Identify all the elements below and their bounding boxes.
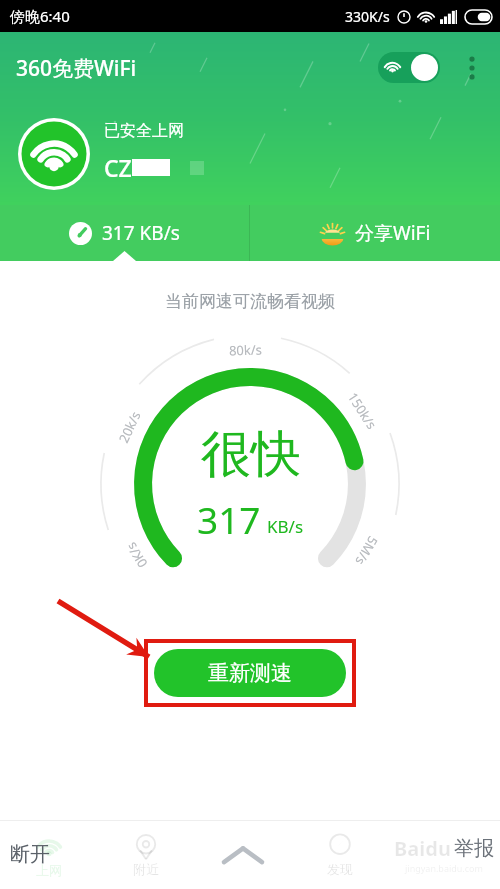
staticText: jingyan.baidu.com (405, 862, 483, 874)
staticText: 傍晚6:40 (10, 6, 70, 26)
staticText: 317 (197, 494, 261, 544)
button[interactable]: 重新测速 (154, 649, 346, 697)
staticText: 20k/s (114, 408, 145, 446)
button[interactable]: Toggle WiFi (378, 52, 440, 83)
staticText: KB/s (267, 515, 304, 538)
staticText: 分享WiFi (355, 220, 431, 246)
staticText: 当前网速可流畅看视频 (165, 291, 335, 312)
staticText: 很快 (201, 423, 301, 486)
staticText: Baidu (394, 835, 451, 862)
button[interactable]: More options (454, 50, 490, 86)
staticText: CZ (104, 152, 132, 183)
button[interactable]: Baidu (388, 820, 500, 889)
staticText: 5M/s (351, 533, 382, 569)
button[interactable]: 上网 (0, 820, 97, 889)
button[interactable]: Expand panel (194, 820, 291, 889)
button[interactable]: 317 KB/s (0, 205, 249, 261)
staticText: 上网 (36, 862, 62, 878)
button[interactable]: 附近 (97, 820, 194, 889)
staticText: 330K/s (345, 7, 390, 26)
staticText: 80k/s (229, 340, 262, 359)
button[interactable]: 发现 (291, 820, 388, 889)
staticText: 150k/s (344, 389, 381, 433)
button[interactable]: 分享WiFi (250, 205, 500, 261)
staticText: 附近 (133, 861, 159, 877)
staticText: 317 KB/s (102, 220, 180, 246)
staticText: 360免费WiFi (16, 54, 137, 83)
staticText: 举报 (454, 836, 494, 861)
staticText: 0K/s (122, 539, 151, 571)
staticText: 已安全上网 (104, 121, 184, 141)
staticText: 发现 (327, 861, 353, 877)
staticText: 断开 (10, 842, 50, 867)
staticText: 重新测速 (208, 660, 292, 686)
